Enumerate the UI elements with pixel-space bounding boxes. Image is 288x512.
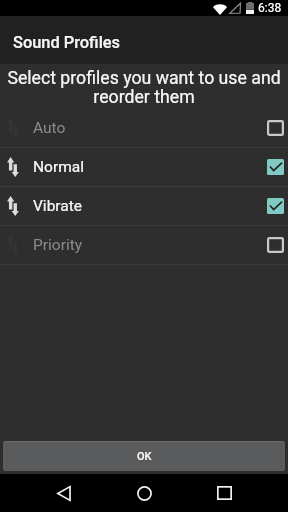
button[interactable]: Recents [200,474,248,512]
staticText: 6:38 [258,1,282,15]
button[interactable]: Normal [0,148,288,186]
staticText: Vibrate [33,197,83,215]
staticText: Sound Profiles [13,33,121,52]
button[interactable]: Priority [0,226,288,264]
button[interactable]: Home [120,474,168,512]
staticText: Select profiles you want to use and reor… [5,68,283,108]
button[interactable]: Vibrate [0,187,288,225]
staticText: Normal [33,158,84,176]
staticText: Auto [33,119,66,137]
button[interactable]: Back [40,474,88,512]
staticText: Priority [33,236,83,254]
button[interactable]: OK [3,441,285,471]
staticText: OK [137,450,152,463]
button[interactable]: Auto [0,109,288,147]
